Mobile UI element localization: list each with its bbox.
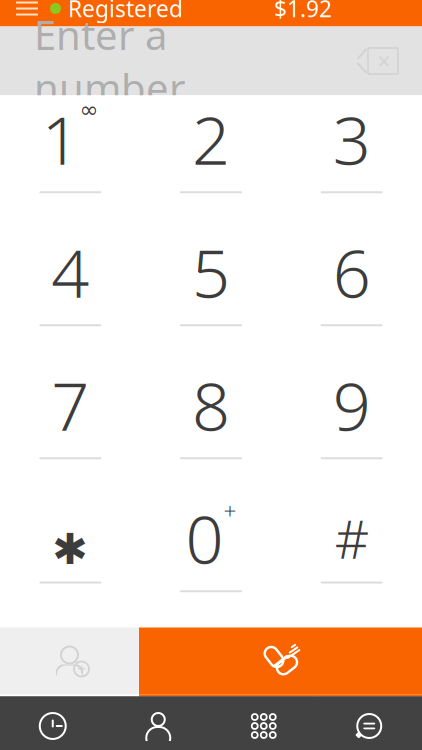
button[interactable]: 1 [0,95,141,228]
button[interactable]: Messages [316,696,422,750]
staticText: + [223,496,236,526]
staticText: + [77,658,86,680]
staticText: 0 [185,494,223,582]
staticText: $1.92 [274,0,332,23]
staticText: ∞ [80,97,99,122]
staticText: # [335,503,369,573]
button[interactable]: Delete [342,36,412,86]
staticText: 9 [333,361,371,449]
staticText: 8 [192,361,230,449]
staticText: 1 [42,95,80,183]
button[interactable]: Add contact [0,627,139,694]
staticText: Registered [68,0,183,23]
button[interactable]: Keypad [211,696,316,750]
button[interactable]: 8 [141,361,281,494]
button[interactable]: # [281,494,422,627]
staticText: 5 [192,228,230,316]
staticText: 7 [51,361,89,449]
button[interactable]: ✱ [0,494,141,627]
button[interactable]: 2 [141,95,281,228]
button[interactable]: Recents [0,696,105,750]
button[interactable]: 5 [141,228,281,361]
button[interactable]: 3 [281,95,422,228]
staticText: 6 [333,228,371,316]
button[interactable]: 6 [281,228,422,361]
staticText: × [377,46,390,76]
button[interactable]: 0 [141,494,281,627]
staticText: 4 [51,228,89,316]
button[interactable]: Contacts [105,696,211,750]
button[interactable]: Menu [4,0,50,26]
button[interactable]: 7 [0,361,141,494]
button[interactable]: 4 [0,228,141,361]
button[interactable]: Call [139,627,422,694]
staticText: Enter a number... [34,8,212,114]
button[interactable]: 9 [281,361,422,494]
staticText: 2 [192,95,230,183]
staticText: 3 [333,95,371,183]
staticText: ✱ [52,525,88,573]
